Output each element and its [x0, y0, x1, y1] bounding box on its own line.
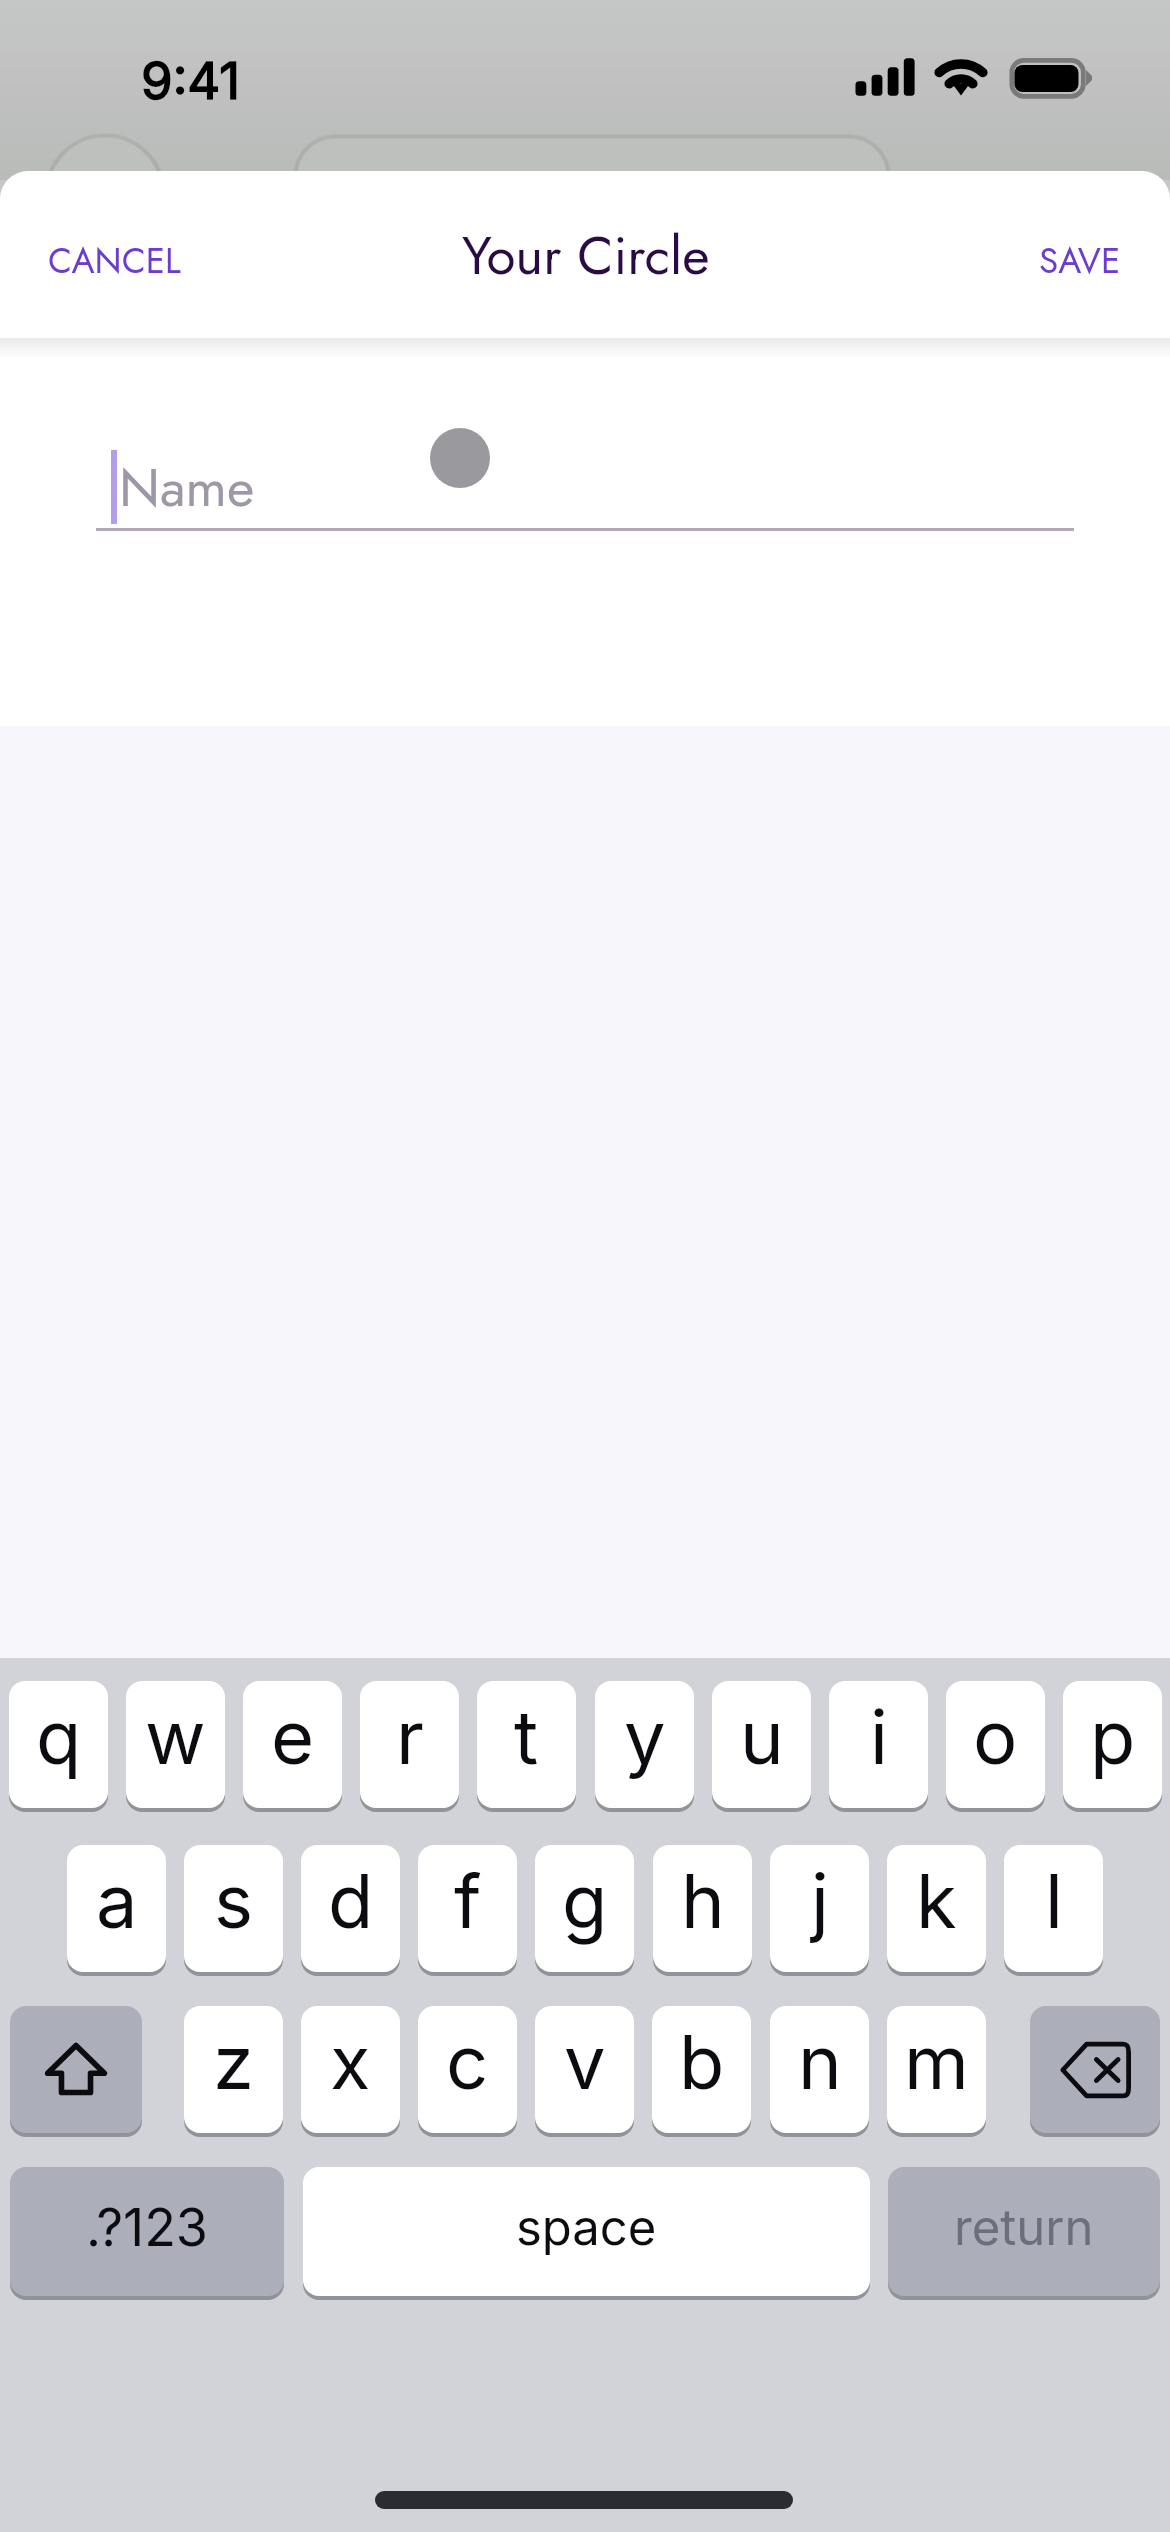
staticText: CANCEL [48, 236, 181, 287]
staticText: x [330, 2017, 371, 2107]
staticText: n [798, 2017, 842, 2107]
staticText: .?123 [86, 2196, 208, 2259]
staticText: space [516, 2198, 657, 2257]
button[interactable]: m [887, 2006, 986, 2133]
staticText: b [679, 2017, 725, 2107]
button[interactable]: h [653, 1845, 752, 1972]
button[interactable]: n [770, 2006, 869, 2133]
button[interactable]: z [184, 2006, 283, 2133]
button[interactable]: y [595, 1681, 694, 1808]
staticText: k [916, 1856, 957, 1946]
button[interactable]: SAVE [1009, 214, 1151, 309]
button[interactable]: j [770, 1845, 869, 1972]
button[interactable]: s [184, 1845, 283, 1972]
staticText: g [562, 1856, 608, 1946]
staticText: Your Circle [462, 217, 710, 294]
button[interactable]: k [887, 1845, 986, 1972]
button[interactable]: b [652, 2006, 751, 2133]
staticText: h [681, 1856, 725, 1946]
staticText: 9:41 [141, 50, 241, 112]
button[interactable]: CANCEL [18, 214, 211, 309]
staticText: y [624, 1692, 666, 1782]
staticText: m [904, 2017, 969, 2107]
button[interactable]: a [67, 1845, 166, 1972]
staticText: Name [119, 449, 255, 526]
button[interactable]: g [535, 1845, 634, 1972]
button[interactable]: q [9, 1681, 108, 1808]
button[interactable]: t [477, 1681, 576, 1808]
staticText: i [870, 1692, 888, 1782]
button[interactable]: r [360, 1681, 459, 1808]
button[interactable]: v [535, 2006, 634, 2133]
button[interactable]: f [418, 1845, 517, 1972]
staticText: return [954, 2198, 1094, 2257]
staticText: w [145, 1692, 206, 1782]
button[interactable]: x [301, 2006, 400, 2133]
button[interactable]: u [712, 1681, 811, 1808]
staticText: e [271, 1692, 315, 1782]
staticText: SAVE [1039, 236, 1121, 287]
staticText: u [740, 1692, 784, 1782]
button[interactable]: w [126, 1681, 225, 1808]
button[interactable]: Choose avatar colour [430, 428, 490, 488]
staticText: v [564, 2017, 606, 2107]
staticText: q [36, 1692, 82, 1782]
button[interactable]: o [946, 1681, 1045, 1808]
staticText: l [1045, 1856, 1063, 1946]
staticText: z [213, 2017, 254, 2107]
button[interactable]: .?123 [10, 2167, 284, 2296]
staticText: t [514, 1692, 539, 1782]
staticText: s [214, 1856, 254, 1946]
staticText: j [811, 1856, 829, 1946]
button[interactable]: space [303, 2167, 870, 2296]
button[interactable]: c [418, 2006, 517, 2133]
button[interactable]: d [301, 1845, 400, 1972]
button[interactable]: Backspace [1030, 2006, 1160, 2133]
button[interactable]: return [888, 2167, 1160, 2296]
staticText: o [973, 1692, 1018, 1782]
button[interactable]: l [1004, 1845, 1103, 1972]
button[interactable]: p [1063, 1681, 1162, 1808]
staticText: c [446, 2017, 489, 2107]
staticText: d [328, 1856, 374, 1946]
staticText: p [1090, 1692, 1136, 1782]
staticText: r [396, 1692, 424, 1782]
button[interactable]: e [243, 1681, 342, 1808]
button[interactable]: Shift [10, 2006, 142, 2133]
staticText: f [454, 1856, 482, 1946]
button[interactable]: i [829, 1681, 928, 1808]
button[interactable] [96, 430, 1074, 531]
staticText: a [96, 1856, 138, 1946]
